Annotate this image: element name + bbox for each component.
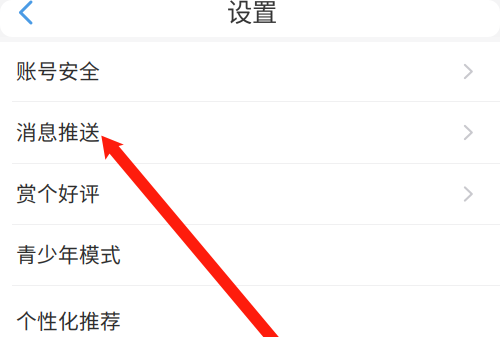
staticText: 个性化推荐 [16,305,121,335]
button[interactable]: Back [0,0,48,25]
button[interactable]: 赏个好评 [0,164,500,224]
staticText: 消息推送 [16,116,100,146]
staticText: 青少年模式 [16,239,121,269]
staticText: 设置 [227,0,277,29]
button[interactable]: 个性化推荐 [0,286,500,337]
staticText: 账号安全 [16,55,100,85]
button[interactable]: 消息推送 [0,102,500,163]
button[interactable]: 账号安全 [0,42,500,101]
button[interactable]: 青少年模式 [0,225,500,285]
staticText: 赏个好评 [16,178,100,208]
